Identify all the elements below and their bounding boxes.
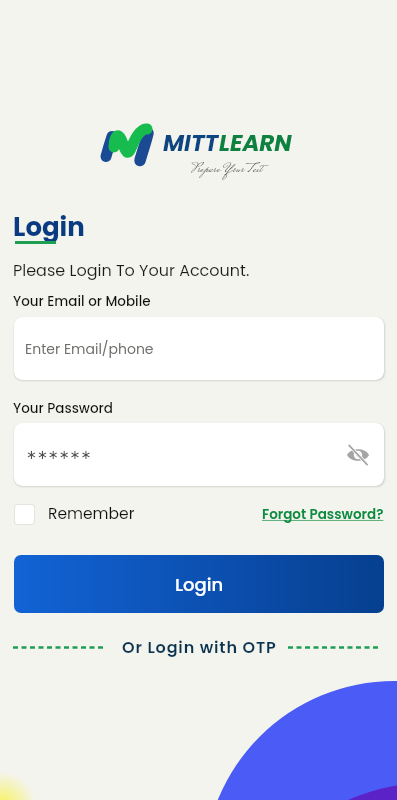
staticText: Remember xyxy=(48,503,135,525)
staticText: MITT xyxy=(163,127,219,159)
button[interactable]: ∗∗∗∗∗∗ xyxy=(14,423,384,486)
button[interactable]: Show password xyxy=(344,441,372,469)
staticText: Login xyxy=(175,572,224,597)
button[interactable]: Login xyxy=(14,555,384,613)
button[interactable]: Enter Email/phone xyxy=(14,317,384,380)
staticText: Or Login with OTP xyxy=(122,636,277,658)
button[interactable]: Forgot Password? xyxy=(262,505,384,524)
staticText: Your Email or Mobile xyxy=(13,292,151,311)
staticText: Prepare Your Test xyxy=(191,159,262,181)
staticText: Your Password xyxy=(13,399,113,418)
button[interactable]: Remember xyxy=(14,503,135,525)
staticText: ∗∗∗∗∗∗ xyxy=(26,447,92,462)
staticText: Please Login To Your Account. xyxy=(13,259,250,281)
staticText: LEARN xyxy=(219,127,292,159)
staticText: Enter Email/phone xyxy=(25,339,154,359)
staticText: Login xyxy=(13,209,85,245)
